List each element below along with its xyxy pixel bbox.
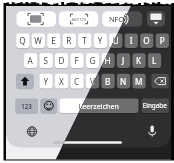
other: Keyboard light and dark theme preview	[0, 0, 174, 163]
